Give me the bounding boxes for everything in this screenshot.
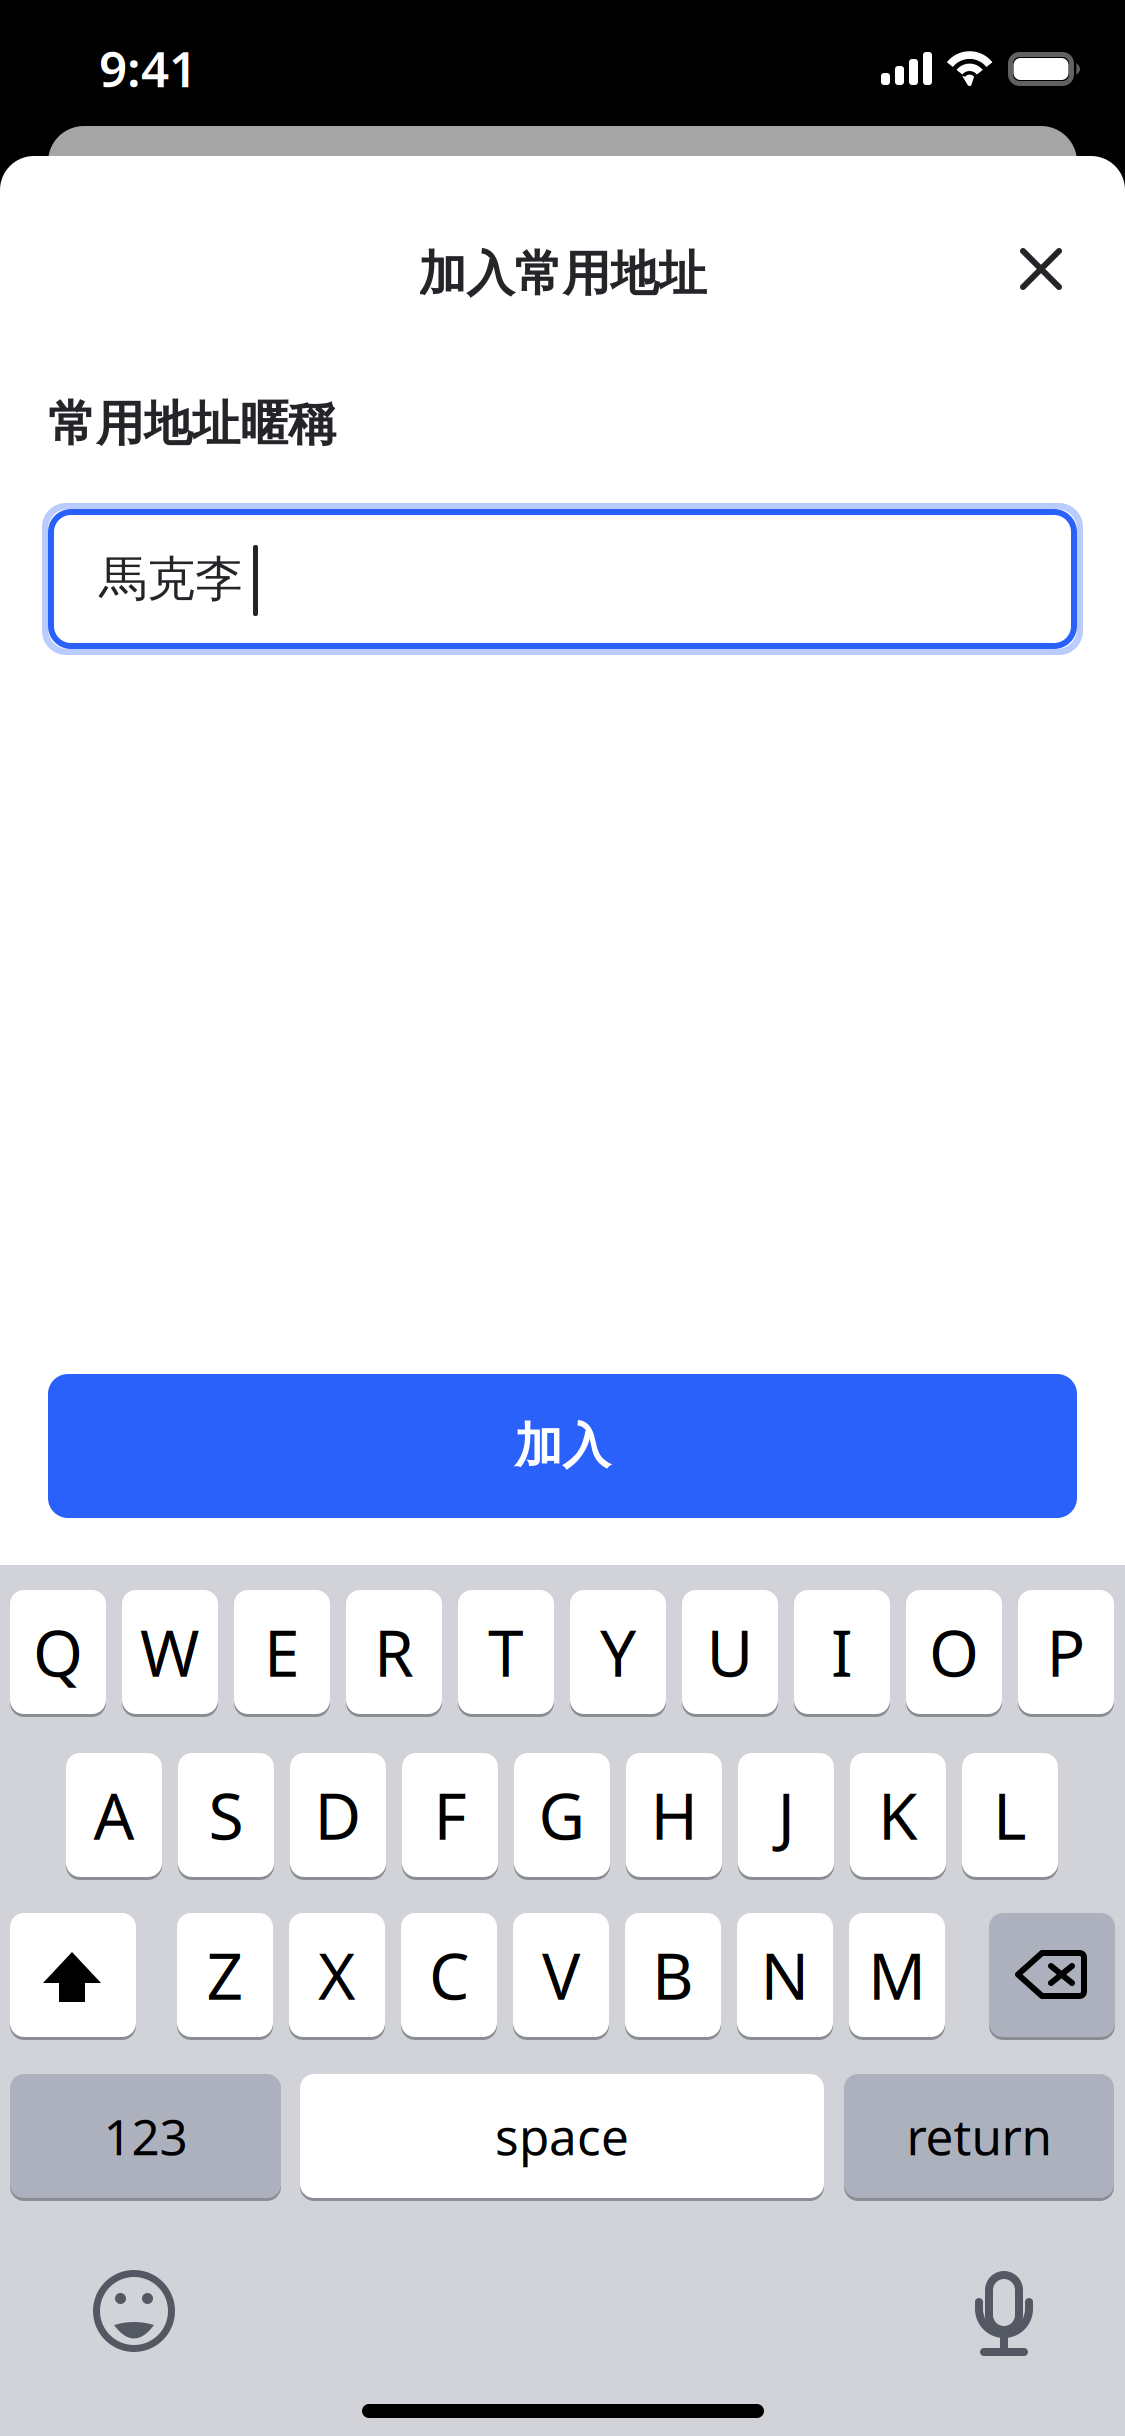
button[interactable]: space — [300, 2074, 824, 2198]
button[interactable]: H — [626, 1753, 722, 1877]
button[interactable]: K — [850, 1753, 946, 1877]
button[interactable]: Close — [998, 226, 1084, 312]
button[interactable]: G — [514, 1753, 610, 1877]
staticText: R — [374, 1609, 414, 1694]
staticText: E — [264, 1609, 300, 1694]
staticText: 加入 — [514, 1416, 610, 1475]
button[interactable]: U — [682, 1590, 778, 1714]
button[interactable]: A — [66, 1753, 162, 1877]
staticText: K — [878, 1772, 918, 1857]
button[interactable]: D — [290, 1753, 386, 1877]
button[interactable]: W — [122, 1590, 218, 1714]
staticText: P — [1046, 1609, 1085, 1694]
button[interactable]: X — [289, 1913, 385, 2037]
staticText: Z — [206, 1932, 243, 2017]
button[interactable]: Shift — [10, 1913, 136, 2037]
button[interactable]: B — [625, 1913, 721, 2037]
staticText: H — [650, 1772, 697, 1857]
staticText: N — [760, 1932, 809, 2017]
staticText: B — [652, 1932, 694, 2017]
staticText: 常用地址暱稱 — [48, 394, 336, 453]
button[interactable]: Q — [10, 1590, 106, 1714]
button[interactable]: 123 — [10, 2074, 281, 2198]
button[interactable]: S — [178, 1753, 274, 1877]
button[interactable]: Emoji — [69, 2246, 199, 2376]
button[interactable]: 加入 — [48, 1374, 1077, 1518]
staticText: U — [706, 1609, 753, 1694]
staticText: return — [906, 2103, 1051, 2169]
staticText: A — [93, 1772, 134, 1857]
button[interactable]: C — [401, 1913, 497, 2037]
button[interactable]: J — [738, 1753, 834, 1877]
staticText: F — [433, 1772, 466, 1857]
button[interactable]: M — [849, 1913, 945, 2037]
staticText: space — [495, 2103, 629, 2169]
staticText: Q — [33, 1609, 83, 1694]
staticText: M — [868, 1932, 926, 2017]
button[interactable]: V — [513, 1913, 609, 2037]
staticText: G — [538, 1772, 585, 1857]
button[interactable]: return — [844, 2074, 1114, 2198]
staticText: O — [929, 1609, 979, 1694]
staticText: 123 — [103, 2103, 187, 2169]
button[interactable]: F — [402, 1753, 498, 1877]
button[interactable]: Z — [177, 1913, 273, 2037]
staticText: V — [542, 1932, 580, 2017]
button[interactable]: Delete — [989, 1913, 1115, 2037]
staticText: D — [314, 1772, 361, 1857]
staticText: 9:41 — [99, 35, 197, 101]
staticText: 加入常用地址 — [418, 244, 706, 303]
staticText: J — [777, 1772, 794, 1857]
staticText: S — [208, 1772, 243, 1857]
button[interactable]: T — [458, 1590, 554, 1714]
staticText: I — [831, 1609, 853, 1694]
button[interactable]: Dictation — [951, 2247, 1057, 2381]
button[interactable]: E — [234, 1590, 330, 1714]
button[interactable]: P — [1018, 1590, 1114, 1714]
staticText: T — [488, 1609, 524, 1694]
staticText: W — [140, 1609, 200, 1694]
staticText: C — [429, 1932, 469, 2017]
staticText: Y — [600, 1609, 636, 1694]
button[interactable]: N — [737, 1913, 833, 2037]
button[interactable]: Y — [570, 1590, 666, 1714]
button[interactable]: O — [906, 1590, 1002, 1714]
staticText: L — [993, 1772, 1027, 1857]
button[interactable]: L — [962, 1753, 1058, 1877]
staticText: 馬克李 — [99, 549, 243, 608]
button[interactable]: I — [794, 1590, 890, 1714]
button[interactable]: R — [346, 1590, 442, 1714]
staticText: X — [318, 1932, 356, 2017]
